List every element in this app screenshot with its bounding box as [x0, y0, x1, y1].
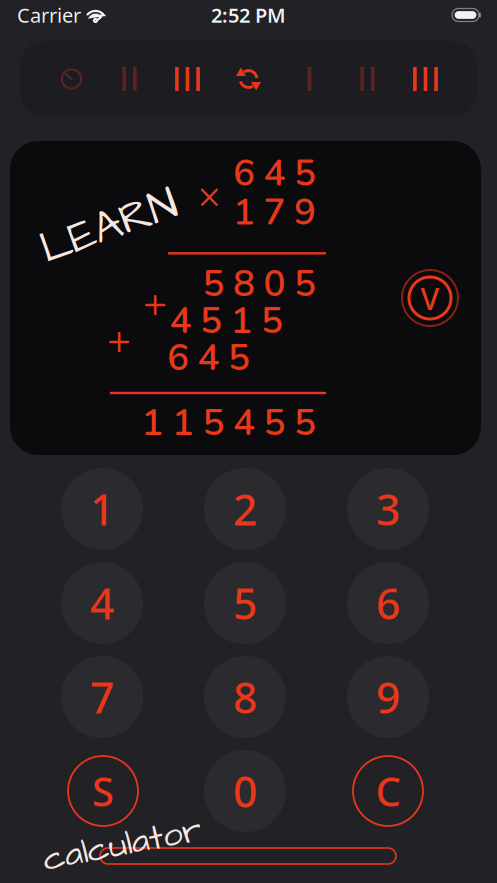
staticText: 8 [233, 669, 257, 725]
button[interactable]: 5 [204, 562, 286, 644]
staticText: 645 [167, 333, 250, 383]
button[interactable]: 6 [347, 562, 429, 644]
staticText: 115455 [141, 398, 316, 448]
staticText: 6 [376, 575, 400, 631]
staticText: LEARN [37, 196, 180, 257]
staticText: + [143, 276, 167, 330]
staticText: Carrier [17, 2, 81, 28]
button[interactable]: 3 [347, 468, 429, 550]
staticText: 4515 [169, 296, 283, 346]
button[interactable]: Two digit multiplier [338, 46, 396, 112]
button[interactable]: 8 [204, 656, 286, 738]
button[interactable]: 4 [61, 562, 143, 644]
staticText: 179 [233, 187, 316, 237]
button[interactable]: 1 [61, 468, 143, 550]
staticText: 645 [233, 148, 316, 198]
staticText: S [92, 764, 114, 817]
button[interactable]: Check answer [402, 270, 458, 326]
staticText: C [375, 764, 400, 817]
staticText: 9 [376, 669, 400, 725]
staticText: 4 [90, 575, 114, 631]
button[interactable]: Three digit multiplicand [158, 46, 216, 112]
button[interactable]: Three digit multiplier [396, 46, 454, 112]
button[interactable]: New problem [216, 46, 280, 112]
staticText: 5805 [202, 259, 316, 309]
staticText: + [107, 313, 131, 367]
staticText: × [198, 170, 220, 221]
staticText: 5 [233, 575, 257, 631]
button[interactable]: One digit multiplier [280, 46, 338, 112]
staticText: calculator [41, 821, 202, 869]
staticText: 7 [90, 669, 114, 725]
staticText: 3 [376, 481, 400, 537]
button[interactable]: C [353, 756, 423, 826]
button[interactable]: 7 [61, 656, 143, 738]
staticText: 2 [233, 481, 257, 537]
button[interactable]: History [42, 46, 100, 112]
staticText: 0 [233, 763, 257, 819]
staticText: 1 [90, 481, 114, 537]
staticText: 2:52 PM [211, 2, 286, 28]
button[interactable]: 9 [347, 656, 429, 738]
button[interactable]: 0 [204, 750, 286, 832]
button[interactable]: Two digit multiplicand [100, 46, 158, 112]
staticText: V [420, 278, 439, 318]
button[interactable]: S [68, 756, 138, 826]
button[interactable]: 2 [204, 468, 286, 550]
